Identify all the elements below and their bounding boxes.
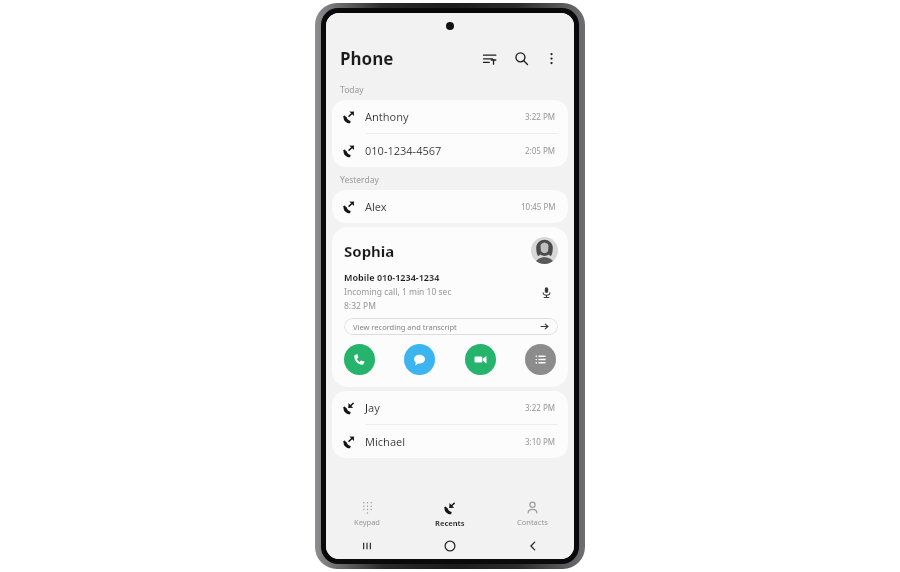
staticText: 010-1234-4567	[365, 143, 525, 158]
staticText: 10:45 PM	[521, 201, 556, 212]
staticText: Today	[340, 84, 364, 96]
button[interactable]: Keypad	[326, 495, 408, 533]
button[interactable]: Back	[491, 533, 574, 559]
button[interactable]: Contact photo	[531, 237, 558, 264]
button[interactable]: Home	[408, 533, 491, 559]
staticText: 3:22 PM	[525, 402, 556, 413]
button[interactable]: More options	[538, 45, 564, 71]
staticText: Jay	[365, 400, 525, 415]
button[interactable]: Message	[404, 344, 435, 375]
button[interactable]: Anthony	[332, 100, 568, 133]
staticText: Keypad	[354, 517, 380, 527]
button[interactable]: Recent apps	[326, 533, 408, 559]
staticText: Incoming call, 1 min 10 sec	[344, 286, 452, 298]
button[interactable]: Jay	[332, 391, 568, 424]
staticText: View recording and transcript	[353, 322, 540, 332]
button[interactable]: 010-1234-4567	[332, 134, 568, 167]
staticText: Mobile 010-1234-1234	[344, 271, 440, 283]
staticText: Sophia	[344, 241, 531, 261]
staticText: Yesterday	[340, 174, 379, 186]
button[interactable]: Contacts	[491, 495, 574, 533]
staticText: Alex	[365, 199, 521, 214]
button[interactable]: Call details	[525, 344, 556, 375]
staticText: Anthony	[365, 109, 525, 124]
button[interactable]: Sort	[476, 45, 502, 71]
button[interactable]: View recording and transcript	[344, 318, 558, 335]
button[interactable]: Recents	[408, 495, 491, 533]
staticText: Phone	[340, 47, 394, 70]
button[interactable]: Call	[344, 344, 375, 375]
button[interactable]: Alex	[332, 190, 568, 223]
staticText: 3:10 PM	[525, 436, 556, 447]
staticText: 2:05 PM	[525, 145, 556, 156]
button[interactable]: Michael	[332, 425, 568, 458]
button[interactable]: Search	[508, 45, 534, 71]
staticText: 3:22 PM	[525, 111, 556, 122]
button[interactable]: Sophia	[332, 227, 568, 387]
staticText: Recents	[435, 518, 465, 528]
button[interactable]: Video call	[465, 344, 496, 375]
staticText: Michael	[365, 434, 525, 449]
button[interactable]: Voice recording	[534, 280, 558, 304]
staticText: Contacts	[517, 517, 548, 527]
staticText: 8:32 PM	[344, 300, 376, 312]
